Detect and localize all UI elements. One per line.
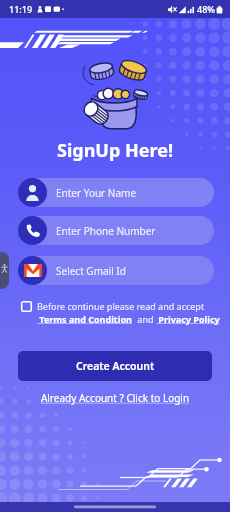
staticText: Create Account (76, 359, 155, 373)
button[interactable]: Terms and Condition (37, 313, 135, 325)
button[interactable]: Create Account (18, 351, 212, 381)
button[interactable] (21, 301, 32, 312)
button[interactable]: Already Account ? Click to Login (0, 391, 230, 405)
staticText: Enter Your Name (56, 186, 137, 200)
staticText: Enter Phone Number (56, 224, 156, 238)
staticText: and (135, 313, 156, 325)
button[interactable]: Accessibility menu (0, 252, 9, 289)
button[interactable]: Enter Your Name (22, 178, 214, 207)
staticText: SignUp Here! (0, 138, 230, 163)
button[interactable]: Select Gmail Id (22, 256, 214, 285)
staticText: 48% (197, 3, 215, 15)
button[interactable]: Enter Phone Number (22, 216, 214, 245)
staticText: Before continue please read and accept (37, 300, 205, 312)
button[interactable]: Privacy Policy (156, 313, 223, 325)
staticText: 11:19 (9, 3, 33, 15)
staticText: Select Gmail Id (56, 264, 126, 278)
